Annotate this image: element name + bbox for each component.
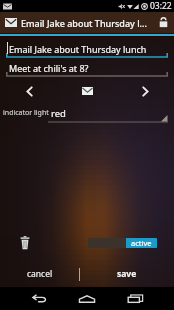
button[interactable]: cancel [0,263,79,285]
button[interactable]: Recent apps [119,287,152,310]
button[interactable]: Home [70,287,103,310]
staticText: cancel [27,268,53,280]
staticText: active [131,238,152,248]
staticText: Meet at chili's at 8? [9,62,89,74]
button[interactable]: red [48,106,168,126]
button[interactable]: Delete [15,233,35,253]
button[interactable]: active [88,238,157,248]
button[interactable]: Email Jake about Thursday lunch [6,40,168,58]
staticText: Email Jake about Thursday lunch [9,43,147,55]
staticText: 03:22 [150,0,172,12]
button[interactable]: save [79,263,174,285]
button[interactable]: Previous [0,80,58,102]
button[interactable]: Lock [153,12,174,33]
button[interactable]: App icon [0,12,21,33]
button[interactable]: Mail type [58,80,116,102]
button[interactable]: Back [22,287,55,310]
staticText: Email Jake about Thursday l... [21,17,153,29]
button[interactable]: Next [116,80,174,102]
staticText: save [117,268,137,280]
button[interactable]: Meet at chili's at 8? [6,59,168,77]
staticText: red [51,107,66,120]
staticText: indicator light [3,108,49,118]
